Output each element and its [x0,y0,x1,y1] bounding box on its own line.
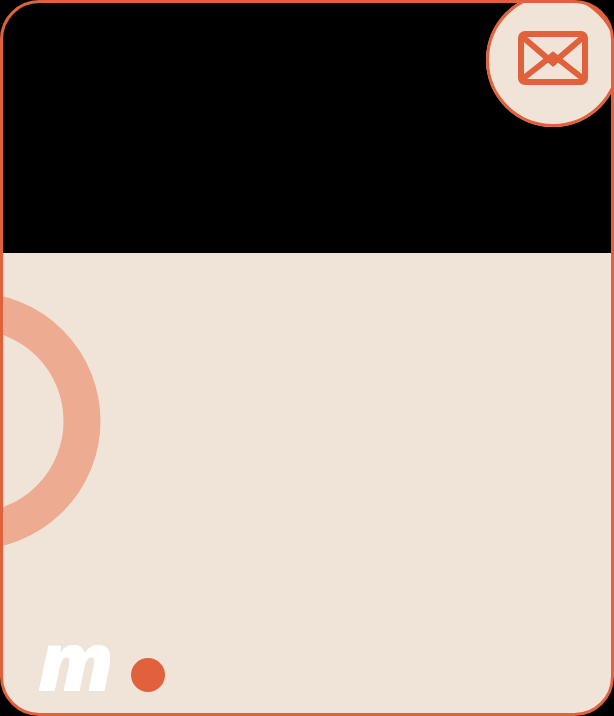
button[interactable]: Mail [486,0,614,128]
staticText: m [38,603,114,715]
